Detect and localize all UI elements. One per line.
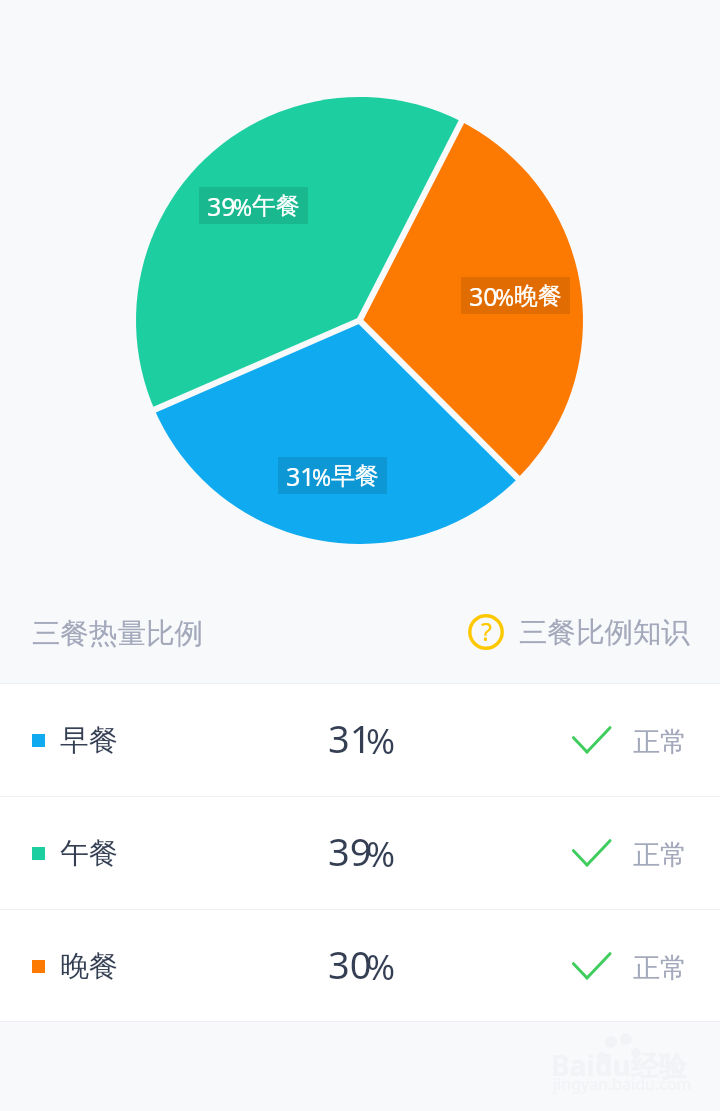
button[interactable]: 午餐 [0,797,720,909]
staticText: % [312,461,332,492]
staticText: 午餐 [60,835,118,872]
staticText: 正常 [633,725,687,759]
staticText: 午餐 [252,191,300,221]
staticText: ? [481,614,492,648]
staticText: 正常 [633,951,687,985]
staticText: % [495,281,515,312]
staticText: % [366,943,396,991]
staticText: % [233,191,253,222]
staticText: 31 [286,459,315,493]
staticText: 30 [469,279,498,313]
button[interactable]: 晚餐 [0,910,720,1022]
staticText: 30 [328,938,372,990]
button[interactable]: 三餐热量比例饼图 [0,0,720,597]
staticText: 早餐 [60,722,118,759]
staticText: 39 [207,189,236,223]
staticText: 晚餐 [514,281,562,311]
staticText: 39 [328,825,372,877]
staticText: 31 [328,712,372,764]
staticText: 三餐热量比例 [32,616,203,652]
staticText: 三餐比例知识 [519,615,690,651]
staticText: 晚餐 [60,948,118,985]
staticText: 正常 [633,838,687,872]
button[interactable]: 早餐 [0,684,720,796]
staticText: % [366,830,396,878]
staticText: 早餐 [331,461,379,491]
other: Help [465,611,507,653]
staticText: % [366,717,396,765]
button[interactable]: Help [465,611,690,653]
